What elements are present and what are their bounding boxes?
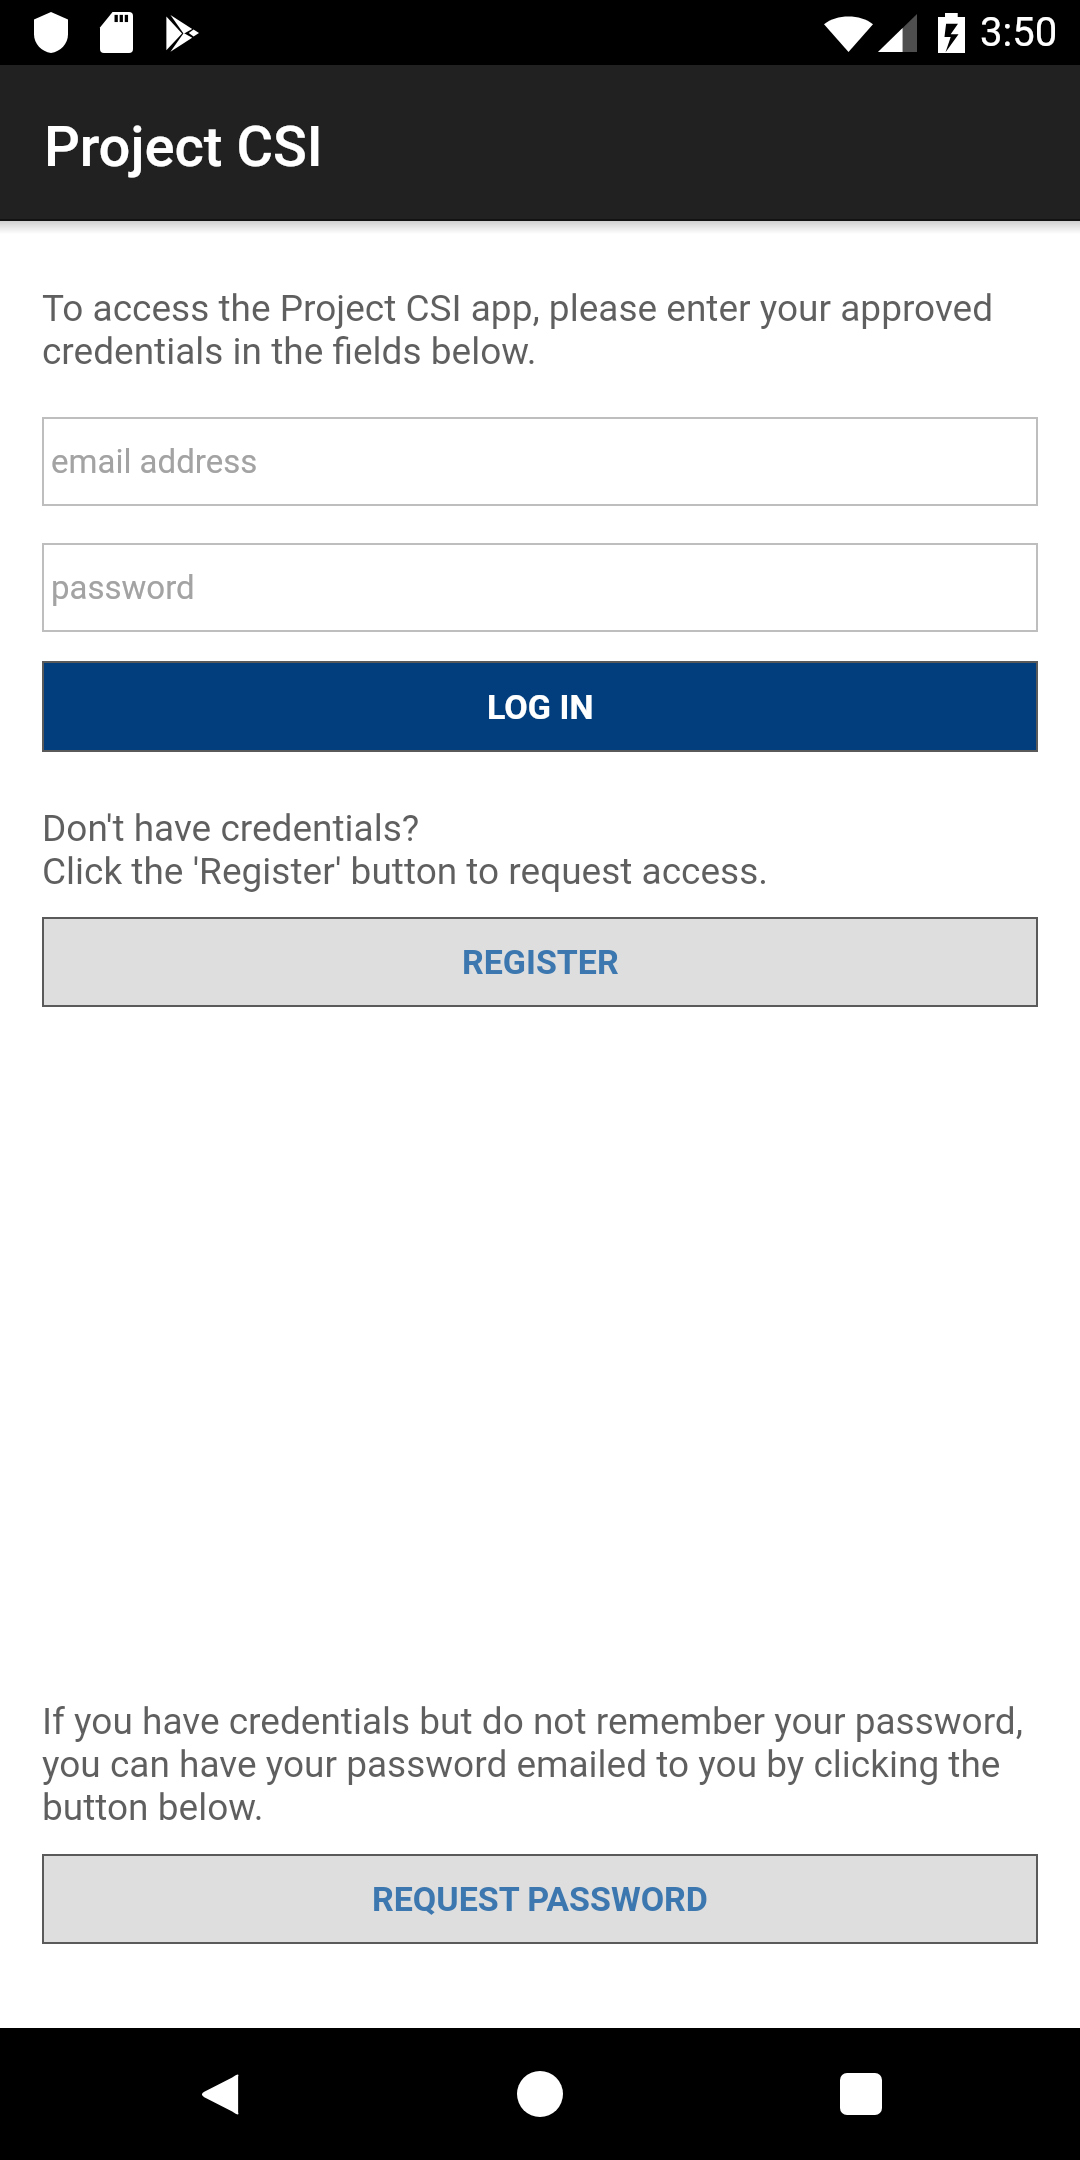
button[interactable]: Recent apps <box>791 2028 931 2160</box>
button[interactable]: REGISTER <box>44 919 1036 1005</box>
staticText: 3:50 <box>980 9 1058 56</box>
button[interactable]: password <box>42 543 1038 632</box>
button[interactable]: Back <box>150 2028 290 2160</box>
staticText: To access the Project CSI app, please en… <box>42 287 1038 373</box>
button[interactable]: email address <box>42 417 1038 506</box>
button[interactable]: LOG IN <box>44 663 1036 750</box>
staticText: REGISTER <box>462 942 619 982</box>
staticText: LOG IN <box>487 687 594 727</box>
staticText: Don't have credentials? Click the 'Regis… <box>42 807 769 893</box>
staticText: password <box>51 568 195 607</box>
staticText: email address <box>51 442 258 481</box>
button[interactable]: Home <box>470 2028 610 2160</box>
staticText: Project CSI <box>44 114 323 180</box>
staticText: If you have credentials but do not remem… <box>42 1700 1038 1829</box>
button[interactable]: REQUEST PASSWORD <box>44 1856 1036 1942</box>
staticText: REQUEST PASSWORD <box>372 1879 708 1919</box>
